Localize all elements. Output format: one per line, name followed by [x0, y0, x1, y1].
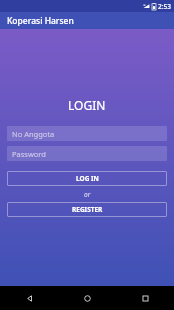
button[interactable]: Back [0, 286, 58, 310]
staticText: Koperasi Harsen [7, 15, 74, 27]
staticText: Password [12, 149, 46, 159]
staticText: 2:53 [158, 2, 171, 11]
button[interactable]: REGISTER [7, 202, 167, 217]
staticText: No Anggota [12, 129, 55, 139]
button[interactable]: Recents [116, 286, 174, 310]
button[interactable]: No Anggota [7, 126, 167, 141]
staticText: or [84, 190, 91, 199]
staticText: REGISTER [72, 205, 103, 214]
button[interactable]: Home [58, 286, 116, 310]
button[interactable]: Password [7, 146, 167, 161]
staticText: LOG IN [76, 174, 99, 183]
button[interactable]: LOG IN [7, 171, 167, 186]
staticText: LOGIN [68, 97, 106, 113]
